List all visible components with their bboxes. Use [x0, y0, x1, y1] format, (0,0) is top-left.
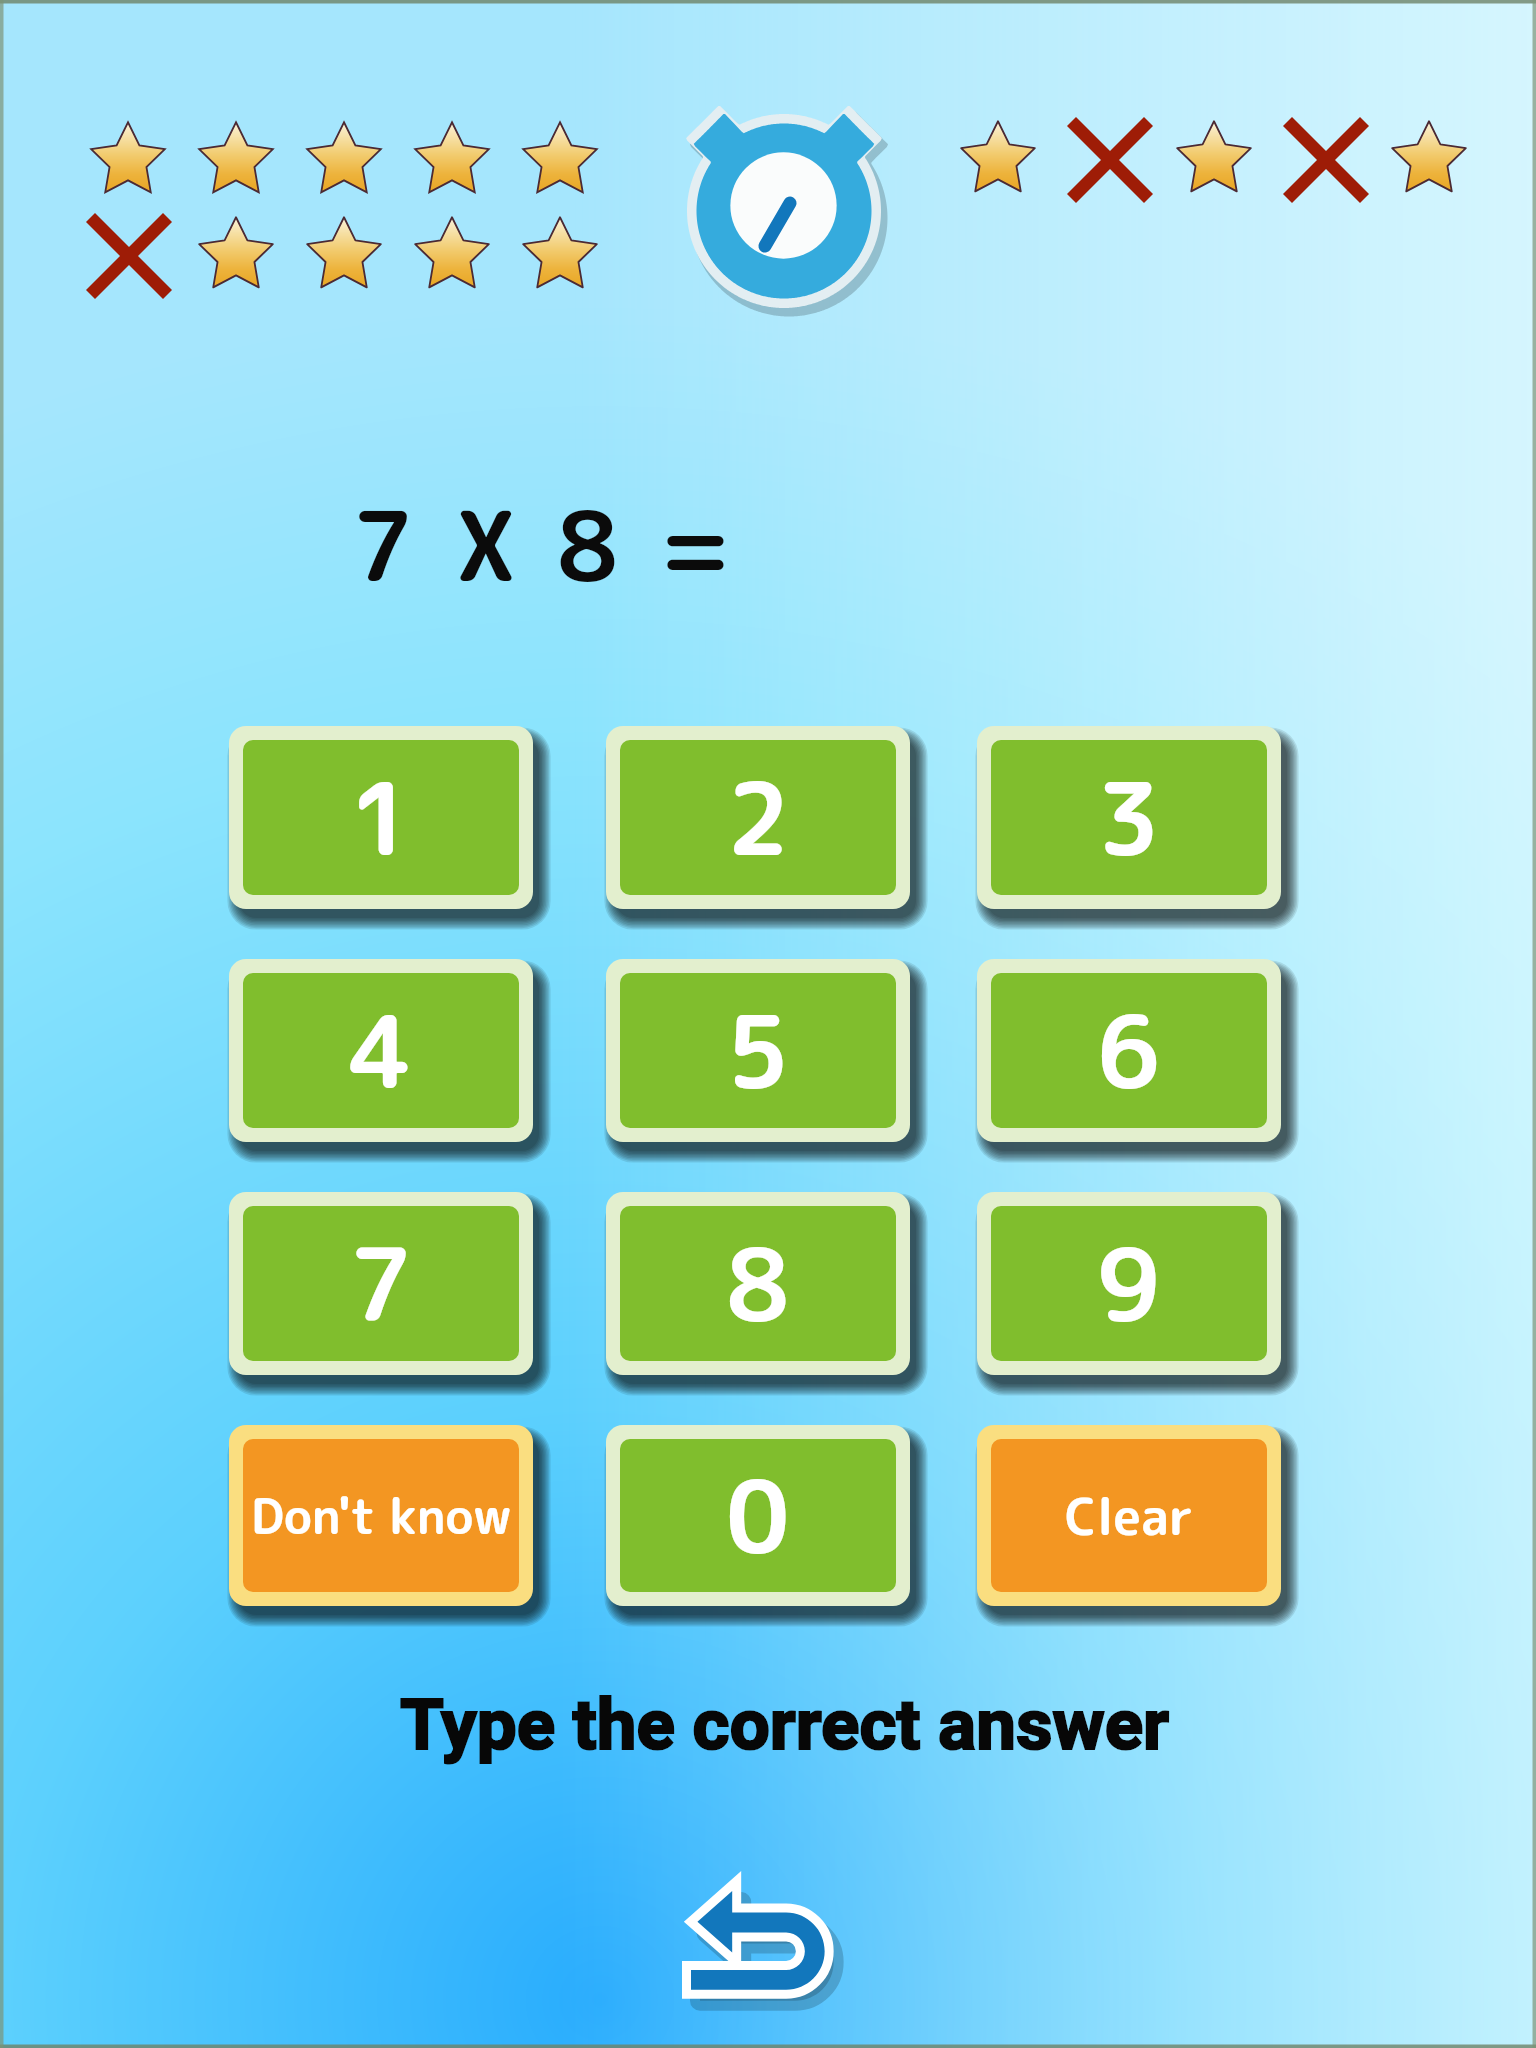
staticText: Type the correct answer — [400, 1683, 1169, 1766]
staticText: 3 — [1097, 749, 1161, 887]
button[interactable]: Timer — [664, 88, 908, 332]
button[interactable]: 1 — [229, 726, 533, 909]
button[interactable]: 2 — [606, 726, 910, 909]
staticText: Don't know — [251, 1482, 512, 1550]
staticText: 2 — [726, 749, 790, 887]
button[interactable]: 0 — [606, 1425, 910, 1606]
staticText: 1 — [349, 749, 413, 887]
button[interactable]: 5 — [606, 959, 910, 1142]
button[interactable]: 9 — [977, 1192, 1281, 1375]
button[interactable]: 7 — [229, 1192, 533, 1375]
button[interactable]: 8 — [606, 1192, 910, 1375]
button[interactable]: Clear — [977, 1425, 1281, 1606]
staticText: 8 — [726, 1215, 790, 1353]
staticText: 6 — [1097, 982, 1161, 1120]
button[interactable]: Back — [650, 1845, 880, 2025]
staticText: 7 — [349, 1215, 413, 1353]
staticText: Clear — [1065, 1481, 1194, 1551]
staticText: 0 — [726, 1447, 790, 1585]
button[interactable]: 4 — [229, 959, 533, 1142]
staticText: 7 X 8 = — [352, 478, 739, 612]
staticText: 5 — [726, 982, 790, 1120]
staticText: 4 — [349, 982, 413, 1120]
button[interactable]: Don't know — [229, 1425, 533, 1606]
staticText: 9 — [1097, 1215, 1161, 1353]
button[interactable]: 3 — [977, 726, 1281, 909]
button[interactable]: 6 — [977, 959, 1281, 1142]
